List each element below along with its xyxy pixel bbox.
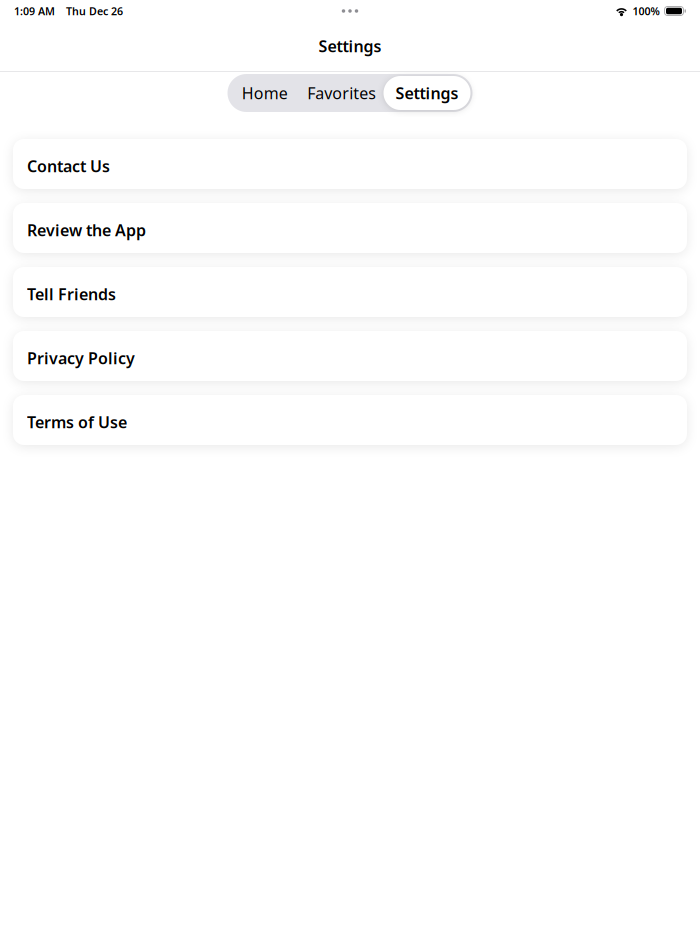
button[interactable]: Terms of Use (13, 395, 687, 445)
staticText: Home (242, 82, 288, 104)
button[interactable]: Favorites (300, 76, 383, 110)
staticText: Contact Us (27, 155, 110, 177)
button[interactable]: Home (229, 76, 300, 110)
staticText: 1:09 AM (14, 4, 55, 18)
staticText: Privacy Policy (27, 347, 135, 369)
staticText: Settings (395, 82, 458, 104)
staticText: Thu Dec 26 (66, 4, 123, 18)
staticText: 100% (632, 4, 659, 18)
button[interactable]: Contact Us (13, 139, 687, 189)
staticText: Review the App (27, 219, 146, 241)
staticText: Tell Friends (27, 283, 116, 305)
staticText: Settings (318, 35, 381, 57)
button[interactable]: Tell Friends (13, 267, 687, 317)
button[interactable]: Review the App (13, 203, 687, 253)
button[interactable]: Settings (383, 76, 470, 110)
staticText: Favorites (307, 82, 376, 104)
button[interactable]: Privacy Policy (13, 331, 687, 381)
staticText: Terms of Use (27, 411, 127, 433)
